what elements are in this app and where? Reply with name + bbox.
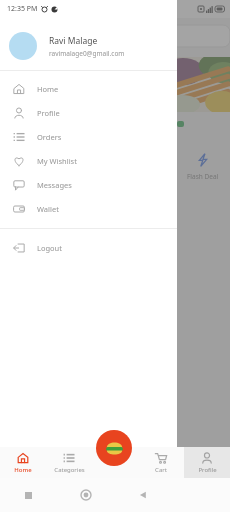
button[interactable]: Order food <box>96 430 132 466</box>
button[interactable]: Profile <box>184 447 230 478</box>
staticText: Flash Deal <box>187 172 219 181</box>
button[interactable]: Cart <box>138 447 184 478</box>
button[interactable]: Orders <box>0 125 177 149</box>
staticText: Ravi Malage <box>49 35 98 47</box>
staticText: Profile <box>37 108 60 118</box>
staticText: Messages <box>37 180 72 190</box>
staticText: Profile <box>198 466 217 474</box>
staticText: Categories <box>54 466 85 474</box>
staticText: 12:35 PM <box>7 4 38 14</box>
staticText: Home <box>14 466 32 474</box>
button[interactable]: Profile <box>0 101 177 125</box>
button[interactable]: Ravi Malage <box>0 29 177 63</box>
staticText: My Wishlist <box>37 156 77 166</box>
staticText: ravimalage0@gmail.com <box>49 49 125 58</box>
button[interactable]: Categories <box>46 447 92 478</box>
staticText: Logout <box>37 243 62 253</box>
button[interactable]: Logout <box>0 236 177 260</box>
button[interactable]: Home <box>0 447 46 478</box>
button[interactable]: Wallet <box>0 197 177 221</box>
button[interactable]: Home <box>0 77 177 101</box>
staticText: Orders <box>37 132 62 142</box>
staticText: Wallet <box>37 204 59 214</box>
button[interactable]: Messages <box>0 173 177 197</box>
staticText: Home <box>37 84 59 94</box>
button[interactable]: My Wishlist <box>0 149 177 173</box>
staticText: Cart <box>155 466 167 474</box>
